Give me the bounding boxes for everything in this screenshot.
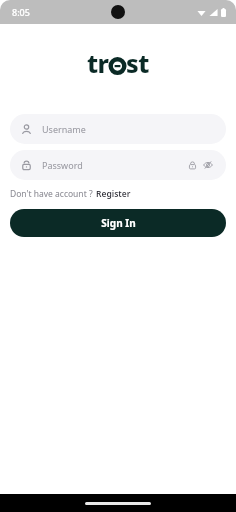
staticText: tr: [87, 46, 109, 80]
button[interactable]: Password: [10, 150, 226, 180]
staticText: Sign In: [101, 216, 136, 230]
staticText: Register: [96, 188, 131, 200]
button[interactable]: Sign In: [10, 209, 226, 237]
button[interactable]: Show password: [201, 158, 215, 172]
staticText: st: [126, 46, 149, 80]
button[interactable]: Secure password: [185, 158, 199, 172]
button[interactable]: Register: [96, 188, 131, 200]
staticText: 8:05: [12, 6, 30, 18]
staticText: Don't have account ?: [10, 188, 93, 200]
button[interactable]: Username: [10, 114, 226, 144]
staticText: Password: [42, 159, 185, 171]
staticText: Username: [42, 123, 86, 135]
